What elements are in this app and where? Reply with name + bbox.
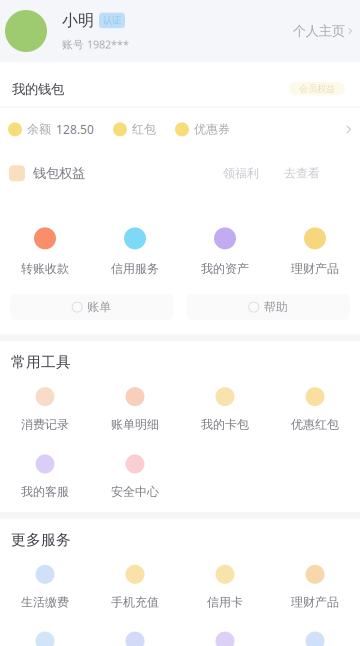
button[interactable]: 生活缴费 bbox=[0, 565, 90, 609]
button[interactable]: 优惠红包 bbox=[270, 387, 360, 432]
staticText: 小明 bbox=[62, 11, 94, 30]
staticText: 常用工具 bbox=[11, 353, 71, 371]
staticText: 钱包权益 bbox=[33, 165, 85, 182]
button[interactable]: 我的客服 bbox=[0, 454, 90, 499]
staticText: 消费记录 bbox=[21, 417, 69, 432]
staticText: 信用卡 bbox=[207, 595, 243, 609]
staticText: 更多服务 bbox=[11, 531, 71, 549]
staticText: 账单 bbox=[87, 300, 111, 314]
staticText: 红包 bbox=[132, 122, 156, 137]
staticText: 我的客服 bbox=[21, 484, 69, 499]
button[interactable]: 信用卡 bbox=[180, 565, 270, 609]
staticText: 生活缴费 bbox=[21, 595, 69, 609]
button[interactable]: 手机充值 bbox=[90, 565, 180, 609]
button[interactable]: 个人主页 bbox=[293, 23, 360, 39]
staticText: 理财产品 bbox=[291, 261, 339, 276]
button[interactable]: 公交地铁 bbox=[0, 632, 90, 646]
button[interactable]: 账单明细 bbox=[90, 387, 180, 432]
button[interactable]: 余额 bbox=[0, 107, 360, 151]
staticText: 个人主页 bbox=[293, 23, 345, 39]
staticText: 认证 bbox=[103, 15, 121, 26]
staticText: 我的卡包 bbox=[201, 417, 249, 432]
button[interactable]: 帮助 bbox=[186, 294, 350, 320]
staticText: 领福利 bbox=[223, 166, 259, 181]
staticText: 手机充值 bbox=[111, 595, 159, 609]
button[interactable]: 账单 bbox=[10, 294, 173, 320]
button[interactable]: 信用服务 bbox=[90, 227, 180, 276]
button[interactable]: 转账收款 bbox=[0, 227, 90, 276]
staticText: 优惠券 bbox=[194, 122, 230, 137]
staticText: 我的钱包 bbox=[12, 81, 64, 97]
button[interactable]: 消费记录 bbox=[0, 387, 90, 432]
staticText: 理财产品 bbox=[291, 595, 339, 609]
button[interactable]: 钱包权益 bbox=[0, 151, 360, 195]
staticText: 账号 1982*** bbox=[62, 37, 129, 51]
button[interactable]: 我的卡包 bbox=[180, 387, 270, 432]
button[interactable]: 我的资产 bbox=[180, 227, 270, 276]
button[interactable]: 安全中心 bbox=[90, 454, 180, 499]
button[interactable]: 小明 bbox=[0, 10, 129, 52]
staticText: 账单明细 bbox=[111, 417, 159, 432]
button[interactable]: 理财产品 bbox=[270, 227, 360, 276]
staticText: 余额 bbox=[27, 122, 51, 137]
button[interactable]: 医疗健康 bbox=[90, 632, 180, 646]
staticText: 信用服务 bbox=[111, 261, 159, 276]
staticText: 安全中心 bbox=[111, 484, 159, 499]
button[interactable]: 更多服务 bbox=[270, 632, 360, 646]
staticText: 会员权益 bbox=[299, 83, 335, 94]
staticText: 我的资产 bbox=[201, 261, 249, 276]
staticText: 去查看 bbox=[284, 166, 320, 181]
staticText: 帮助 bbox=[264, 300, 288, 314]
button[interactable]: 教育缴费 bbox=[180, 632, 270, 646]
button[interactable]: 理财产品 bbox=[270, 565, 360, 609]
staticText: 转账收款 bbox=[21, 261, 69, 276]
staticText: 128.50 bbox=[56, 121, 94, 137]
staticText: 优惠红包 bbox=[291, 417, 339, 432]
